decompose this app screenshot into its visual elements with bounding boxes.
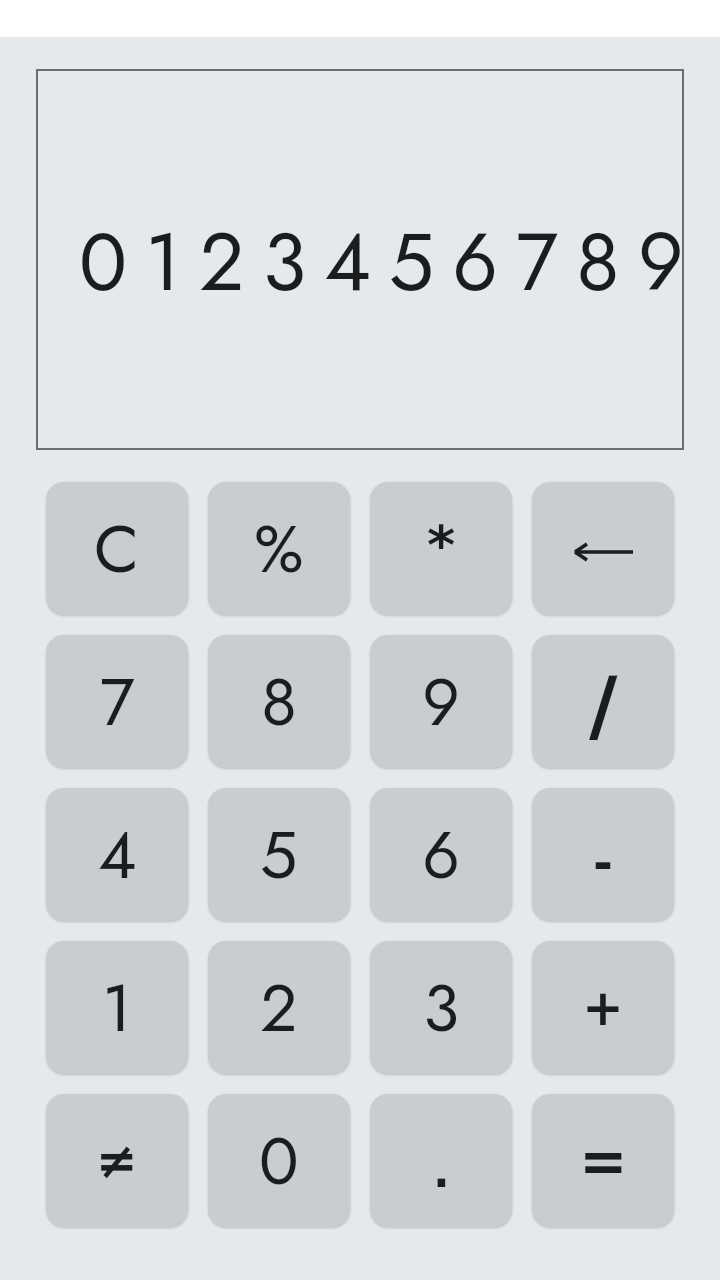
staticText: 5 xyxy=(260,807,298,902)
staticText: ≠ xyxy=(96,1132,138,1190)
staticText: = xyxy=(579,1127,628,1195)
button[interactable]: 1 xyxy=(46,941,188,1074)
staticText: . xyxy=(433,1146,450,1197)
staticText: 3 xyxy=(423,960,460,1055)
staticText: 4 xyxy=(98,807,137,902)
button[interactable]: 2 xyxy=(208,941,350,1074)
button[interactable]: / xyxy=(532,635,674,768)
button[interactable]: 6 xyxy=(370,788,512,921)
staticText: 6 xyxy=(422,807,461,902)
button[interactable]: 0 xyxy=(208,1094,350,1227)
staticText: 8 xyxy=(261,654,298,749)
staticText: % xyxy=(254,501,304,596)
button[interactable] xyxy=(532,482,674,615)
button[interactable]: ≠ xyxy=(46,1094,188,1227)
button[interactable]: 7 xyxy=(46,635,188,768)
staticText: 9 xyxy=(422,654,461,749)
button[interactable]: 9 xyxy=(370,635,512,768)
staticText: * xyxy=(427,514,456,577)
button[interactable]: C xyxy=(46,482,188,615)
staticText: 0 xyxy=(259,1113,299,1208)
button[interactable]: . xyxy=(370,1094,512,1227)
button[interactable]: % xyxy=(208,482,350,615)
button[interactable]: + xyxy=(532,941,674,1074)
staticText: / xyxy=(589,661,618,752)
button[interactable]: 8 xyxy=(208,635,350,768)
staticText: 1 xyxy=(102,960,132,1055)
staticText: 2 xyxy=(260,960,298,1055)
button[interactable]: 4 xyxy=(46,788,188,921)
button[interactable]: 5 xyxy=(208,788,350,921)
staticText: C xyxy=(94,501,140,596)
button[interactable]: = xyxy=(532,1094,674,1227)
staticText: 0123456789 xyxy=(79,204,702,320)
button[interactable]: 3 xyxy=(370,941,512,1074)
staticText: - xyxy=(593,834,613,890)
staticText: + xyxy=(582,979,624,1037)
button[interactable]: - xyxy=(532,788,674,921)
staticText: 7 xyxy=(100,654,135,749)
button[interactable]: * xyxy=(370,482,512,615)
